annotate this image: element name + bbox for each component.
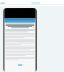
button[interactable]: Continue bbox=[18, 64, 23, 66]
